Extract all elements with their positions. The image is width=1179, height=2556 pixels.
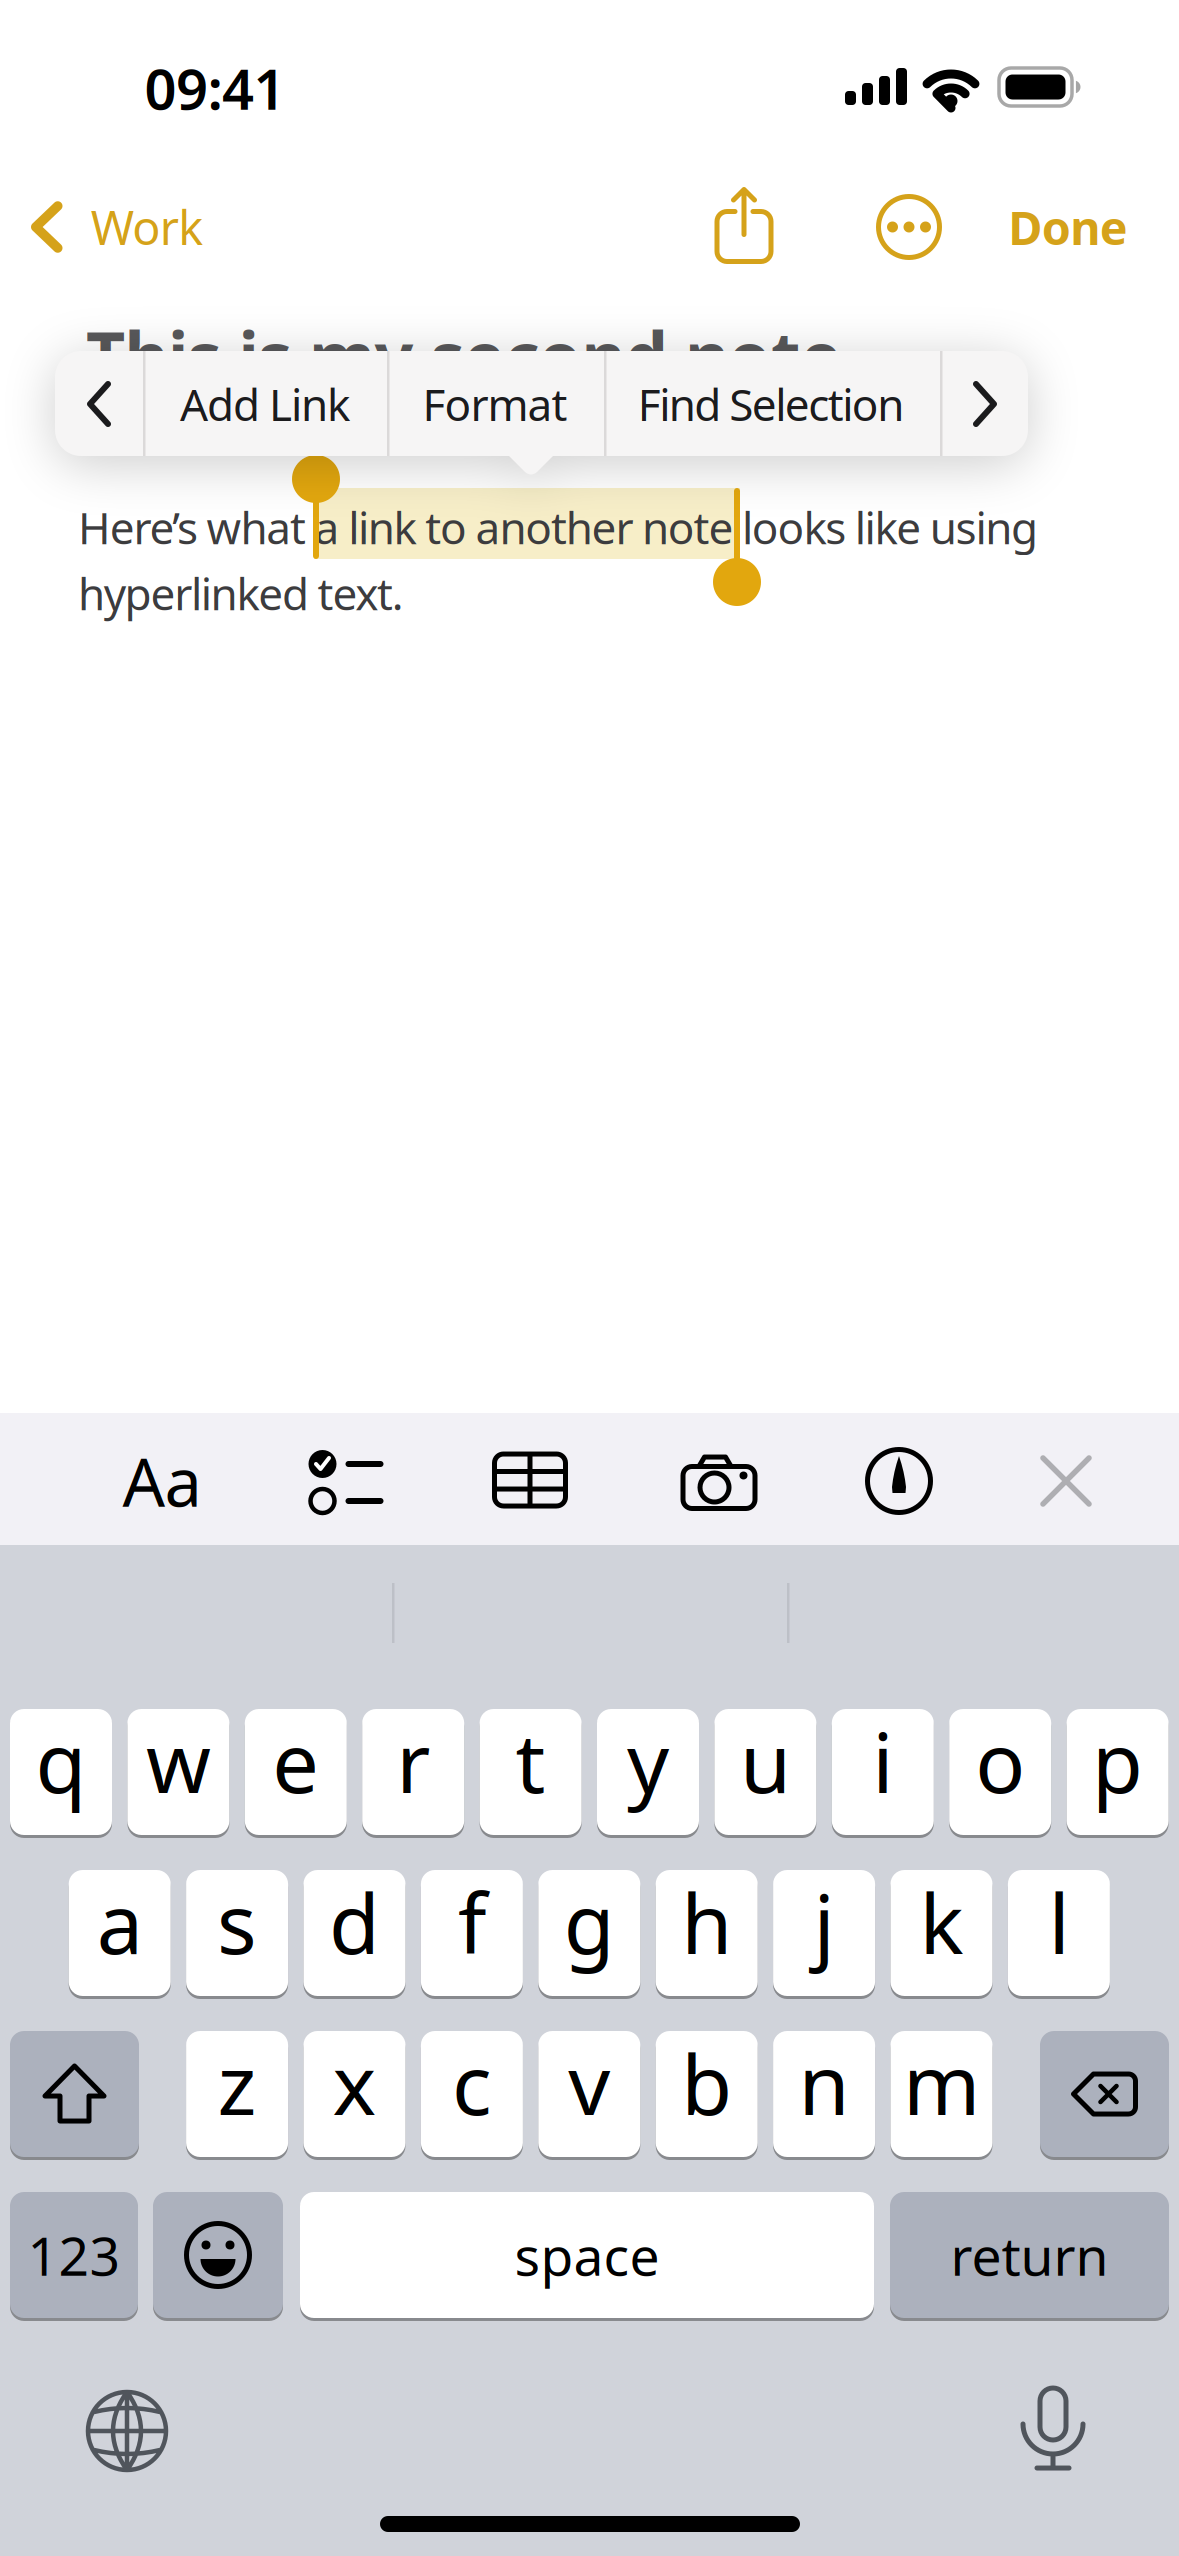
staticText: e — [272, 1706, 319, 1816]
button[interactable]: Format text — [122, 1437, 201, 1525]
button[interactable]: Dictate — [1023, 2388, 1083, 2470]
staticText: z — [218, 2028, 257, 2138]
staticText: Format — [422, 375, 567, 433]
staticText: v — [568, 2028, 610, 2138]
staticText: w — [146, 1706, 211, 1816]
button[interactable]: a — [69, 1870, 171, 1996]
staticText: Done — [1008, 196, 1128, 258]
button[interactable]: Shift — [10, 2031, 139, 2157]
staticText: return — [950, 2220, 1108, 2290]
staticText: a — [97, 1867, 143, 1977]
button[interactable]: More — [876, 194, 942, 260]
button[interactable]: c — [421, 2031, 523, 2157]
button[interactable]: Find Selection — [638, 375, 904, 433]
button[interactable]: k — [890, 1870, 992, 1996]
button[interactable]: Previous actions — [90, 384, 108, 424]
button[interactable]: Add Link — [180, 375, 350, 433]
staticText: Find Selection — [638, 375, 904, 433]
button[interactable]: Next actions — [976, 384, 994, 424]
button[interactable]: Next keyboard — [86, 2390, 168, 2472]
button[interactable]: Markup — [865, 1447, 933, 1515]
button[interactable]: Dismiss keyboard — [1043, 1458, 1089, 1504]
button[interactable]: space — [300, 2192, 874, 2318]
button[interactable]: Share — [715, 186, 773, 263]
staticText: n — [799, 2028, 850, 2138]
button[interactable]: f — [421, 1870, 523, 1996]
staticText: j — [814, 1867, 835, 1977]
staticText: m — [903, 2028, 980, 2138]
button[interactable]: r — [362, 1709, 464, 1835]
button[interactable]: s — [186, 1870, 288, 1996]
staticText: 09:41 — [144, 51, 285, 125]
staticText: This is my second note — [86, 310, 841, 400]
staticText: y — [627, 1706, 669, 1816]
staticText: Add Link — [180, 375, 350, 433]
button[interactable]: Done — [1008, 196, 1128, 258]
staticText: q — [35, 1706, 86, 1816]
button[interactable]: j — [773, 1870, 875, 1996]
staticText: f — [458, 1867, 486, 1977]
staticText: t — [516, 1706, 546, 1816]
staticText: g — [564, 1867, 615, 1977]
button[interactable]: Numbers — [10, 2192, 138, 2318]
staticText: h — [681, 1867, 732, 1977]
staticText: b — [681, 2028, 732, 2138]
staticText: c — [452, 2028, 492, 2138]
button[interactable]: g — [538, 1870, 640, 1996]
button[interactable]: Insert photo — [680, 1453, 757, 1510]
staticText: u — [740, 1706, 791, 1816]
button[interactable]: q — [10, 1709, 112, 1835]
button[interactable]: Format — [422, 375, 567, 433]
staticText: s — [217, 1867, 257, 1977]
button[interactable]: Checklist — [308, 1451, 381, 1515]
button[interactable]: p — [1067, 1709, 1169, 1835]
staticText: d — [329, 1867, 380, 1977]
staticText: hyperlinked text. — [78, 564, 404, 622]
staticText: space — [514, 2220, 659, 2290]
staticText: i — [872, 1706, 893, 1816]
staticText: o — [975, 1706, 1025, 1816]
staticText: 123 — [27, 2220, 120, 2290]
button[interactable]: i — [832, 1709, 934, 1835]
button[interactable]: z — [186, 2031, 288, 2157]
button[interactable]: t — [480, 1709, 582, 1835]
button[interactable]: Delete — [1040, 2031, 1169, 2157]
button[interactable]: v — [538, 2031, 640, 2157]
button[interactable]: return — [890, 2192, 1169, 2318]
staticText: x — [332, 2028, 376, 2138]
staticText: Aa — [122, 1437, 201, 1525]
button[interactable]: d — [303, 1870, 405, 1996]
button[interactable]: Table — [492, 1451, 568, 1508]
staticText: k — [919, 1867, 963, 1977]
button[interactable]: u — [714, 1709, 816, 1835]
button[interactable]: n — [773, 2031, 875, 2157]
button[interactable]: o — [949, 1709, 1051, 1835]
staticText: l — [1048, 1867, 1069, 1977]
button[interactable]: h — [656, 1870, 758, 1996]
button[interactable]: e — [245, 1709, 347, 1835]
button[interactable]: x — [303, 2031, 405, 2157]
staticText: Work — [91, 196, 203, 258]
button[interactable]: Emoji — [153, 2192, 283, 2318]
staticText: r — [396, 1706, 430, 1816]
button[interactable]: w — [127, 1709, 229, 1835]
button[interactable]: l — [1008, 1870, 1110, 1996]
button[interactable]: y — [597, 1709, 699, 1835]
button[interactable]: b — [656, 2031, 758, 2157]
button[interactable]: Work — [31, 196, 203, 258]
staticText: Here’s what a link to another note looks… — [78, 498, 1038, 556]
staticText: p — [1092, 1706, 1143, 1816]
button[interactable]: m — [890, 2031, 992, 2157]
